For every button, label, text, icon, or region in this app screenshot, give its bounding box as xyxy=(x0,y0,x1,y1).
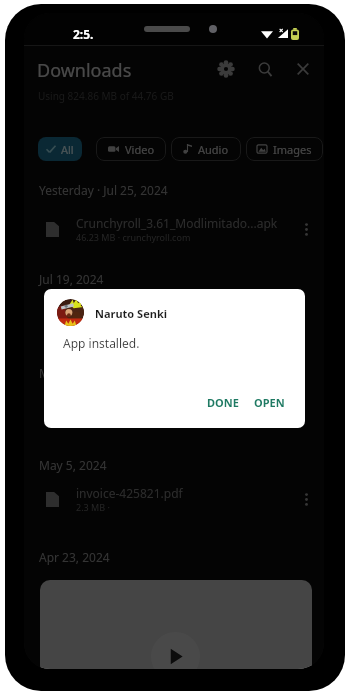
staticText: Crunchyroll_3.61_Modlimitado...apk xyxy=(76,215,278,231)
button[interactable]: Audio xyxy=(171,137,241,161)
staticText: 2:5. xyxy=(73,26,94,42)
button[interactable]: More options xyxy=(296,489,316,509)
staticText: Video xyxy=(125,142,155,157)
button[interactable]: All xyxy=(38,137,82,161)
staticText: All xyxy=(61,142,74,157)
button[interactable] xyxy=(40,580,312,669)
staticText: Audio xyxy=(198,142,229,157)
staticText: May 5, 2024 xyxy=(39,457,107,473)
button[interactable]: invoice-425821.pdf xyxy=(24,480,324,518)
staticText: Naruto Senki xyxy=(95,306,167,321)
button[interactable]: More options xyxy=(296,219,316,239)
staticText: Images xyxy=(273,142,312,157)
staticText: invoice-425821.pdf xyxy=(76,485,183,501)
staticText: 2.3 MB · xyxy=(76,501,110,513)
staticText: Using 824.86 MB of 44.76 GB xyxy=(38,89,174,103)
staticText: Mar 11, 2024 xyxy=(39,365,113,381)
staticText: Jul 19, 2024 xyxy=(39,271,104,287)
staticText: Apr 23, 2024 xyxy=(39,549,110,565)
button[interactable]: Images xyxy=(246,137,323,161)
staticText: 46.23 MB · crunchyroll.com xyxy=(76,231,191,243)
button[interactable]: Video xyxy=(96,137,166,161)
button[interactable]: DONE xyxy=(200,390,246,415)
staticText: App installed. xyxy=(63,335,140,351)
staticText: Downloads xyxy=(37,58,132,83)
button[interactable]: Settings xyxy=(214,57,238,81)
staticText: DONE xyxy=(207,395,239,410)
button[interactable]: Crunchyroll_3.61_Modlimitado...apk xyxy=(24,210,324,248)
button[interactable]: Search xyxy=(253,57,277,81)
button[interactable]: Close xyxy=(291,57,315,81)
button[interactable]: OPEN xyxy=(247,390,292,415)
staticText: Yesterday · Jul 25, 2024 xyxy=(39,182,168,198)
staticText: OPEN xyxy=(254,395,285,410)
